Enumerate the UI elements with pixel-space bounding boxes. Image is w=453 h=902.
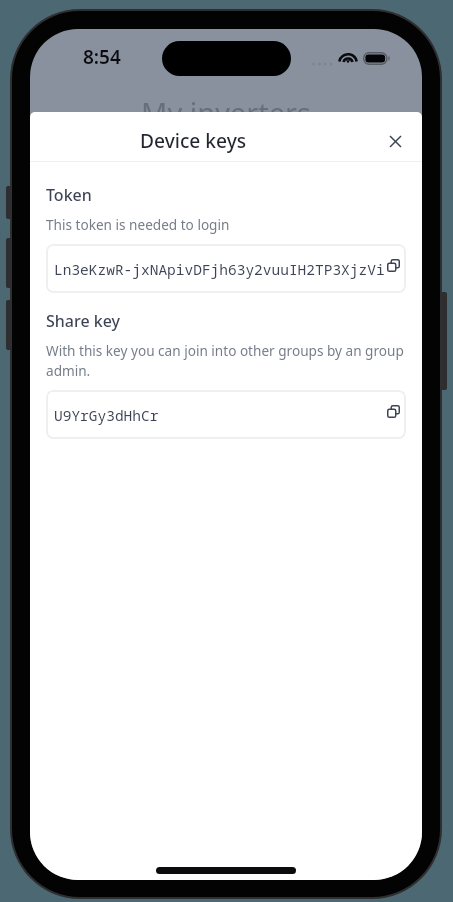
button[interactable]: Ln3eKzwR-jxNApivDFjh63y2vuuIH2TP3XjzVi — [46, 244, 406, 293]
staticText: Ln3eKzwR-jxNApivDFjh63y2vuuIH2TP3XjzVi — [54, 259, 385, 279]
staticText: Token — [46, 184, 92, 206]
staticText: My inverters — [30, 93, 422, 132]
staticText: U9YrGy3dHhCr — [54, 405, 159, 425]
staticText: Share key — [46, 310, 121, 332]
staticText: With this key you can join into other gr… — [46, 341, 406, 380]
staticText: 8:54 — [83, 44, 121, 70]
other: Wi-Fi — [339, 50, 357, 63]
button[interactable]: Close — [377, 123, 413, 159]
other: Cellular signal — [312, 60, 331, 68]
other: Battery — [363, 52, 390, 65]
staticText: Device keys — [140, 127, 247, 153]
staticText: This token is needed to login — [46, 215, 230, 234]
button[interactable]: U9YrGy3dHhCr — [46, 390, 406, 439]
